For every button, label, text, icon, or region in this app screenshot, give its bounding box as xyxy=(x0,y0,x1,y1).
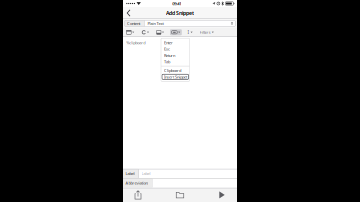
staticText: Label: xyxy=(125,171,135,176)
button[interactable]: Clipboard xyxy=(161,67,190,74)
staticText: Content xyxy=(127,21,140,26)
button[interactable]: Filters xyxy=(198,29,215,36)
button[interactable]: Enter xyxy=(161,39,190,46)
staticText: Clipboard xyxy=(164,68,181,73)
button[interactable]: Document actions xyxy=(155,29,166,35)
staticText: Filters xyxy=(200,30,211,35)
button[interactable]: Key actions xyxy=(170,29,182,35)
button[interactable]: Window actions xyxy=(125,29,136,35)
button[interactable] xyxy=(153,178,237,188)
button[interactable]: Plain Text xyxy=(145,20,235,26)
button[interactable]: Back xyxy=(123,7,137,19)
staticText: %clipboard xyxy=(126,40,145,45)
button[interactable]: Insert Snippet xyxy=(161,74,190,80)
button[interactable]: Esc xyxy=(161,46,190,52)
button[interactable]: Cursor actions xyxy=(186,28,194,36)
staticText: Label xyxy=(142,171,151,176)
staticText: Add Snippet xyxy=(166,9,194,17)
staticText: Insert Snippet xyxy=(164,74,187,79)
button[interactable]: Share xyxy=(125,188,151,202)
staticText: Enter xyxy=(164,40,173,45)
staticText: 09:41 xyxy=(172,1,181,6)
button[interactable]: System actions xyxy=(140,29,151,35)
staticText: Esc xyxy=(164,46,170,52)
button[interactable]: Tab xyxy=(161,58,190,65)
staticText: Tab xyxy=(164,59,170,64)
staticText: Abbreviation: xyxy=(125,180,148,186)
button[interactable]: Run snippet xyxy=(209,188,235,202)
staticText: I xyxy=(188,29,190,35)
staticText: Plain Text xyxy=(147,21,163,26)
staticText: Return xyxy=(164,53,175,58)
button[interactable]: Open folder xyxy=(167,188,193,202)
button[interactable]: Return xyxy=(161,52,190,58)
button[interactable]: Label xyxy=(139,169,237,178)
